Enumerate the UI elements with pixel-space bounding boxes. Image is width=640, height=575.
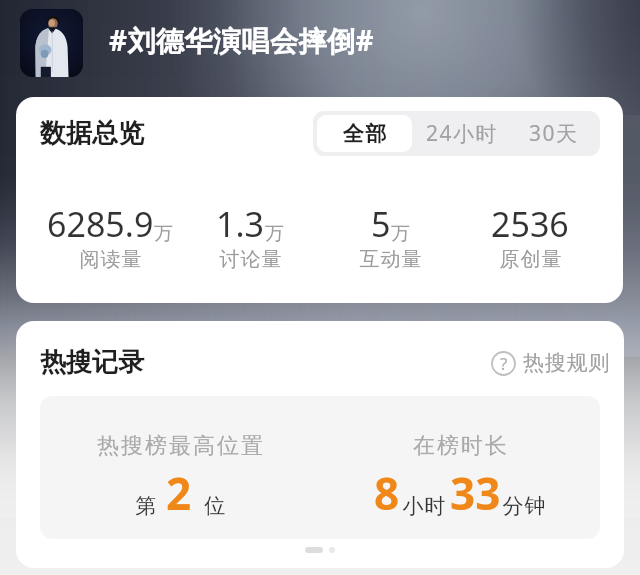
staticText: 2536 bbox=[491, 201, 569, 247]
staticText: 在榜时长 bbox=[412, 432, 508, 460]
button[interactable]: 24小时 bbox=[416, 111, 508, 156]
staticText: 分钟 bbox=[502, 493, 546, 519]
staticText: 讨论量 bbox=[219, 247, 282, 272]
button[interactable]: Topic cover photo bbox=[20, 9, 83, 77]
staticText: 2 bbox=[166, 463, 192, 523]
staticText: 数据总览 bbox=[40, 117, 144, 150]
staticText: 原创量 bbox=[499, 247, 562, 272]
button[interactable]: 全部 bbox=[317, 115, 412, 152]
staticText: 万 bbox=[265, 222, 284, 246]
staticText: 1.3 bbox=[216, 201, 265, 247]
staticText: ? bbox=[500, 352, 508, 375]
staticText: 热搜榜最高位置 bbox=[96, 432, 264, 460]
staticText: 万 bbox=[391, 222, 410, 246]
staticText: 24小时 bbox=[426, 119, 499, 148]
staticText: 热搜记录 bbox=[40, 346, 144, 379]
staticText: 热搜规则 bbox=[523, 350, 611, 376]
staticText: 阅读量 bbox=[79, 247, 142, 272]
staticText: 33 bbox=[450, 463, 501, 523]
staticText: 互动量 bbox=[359, 247, 422, 272]
staticText: 全部 bbox=[342, 121, 387, 147]
staticText: 小时 bbox=[402, 493, 446, 519]
staticText: 万 bbox=[154, 222, 173, 246]
button[interactable]: ? bbox=[491, 350, 611, 376]
button[interactable]: 30天 bbox=[508, 111, 600, 156]
staticText: 位 bbox=[204, 493, 226, 519]
staticText: #刘德华演唱会摔倒# bbox=[109, 21, 375, 59]
staticText: 8 bbox=[374, 463, 400, 523]
staticText: 6285.9 bbox=[47, 201, 154, 247]
staticText: 第 bbox=[135, 493, 157, 519]
staticText: 30天 bbox=[529, 119, 579, 148]
staticText: 5 bbox=[371, 201, 391, 247]
